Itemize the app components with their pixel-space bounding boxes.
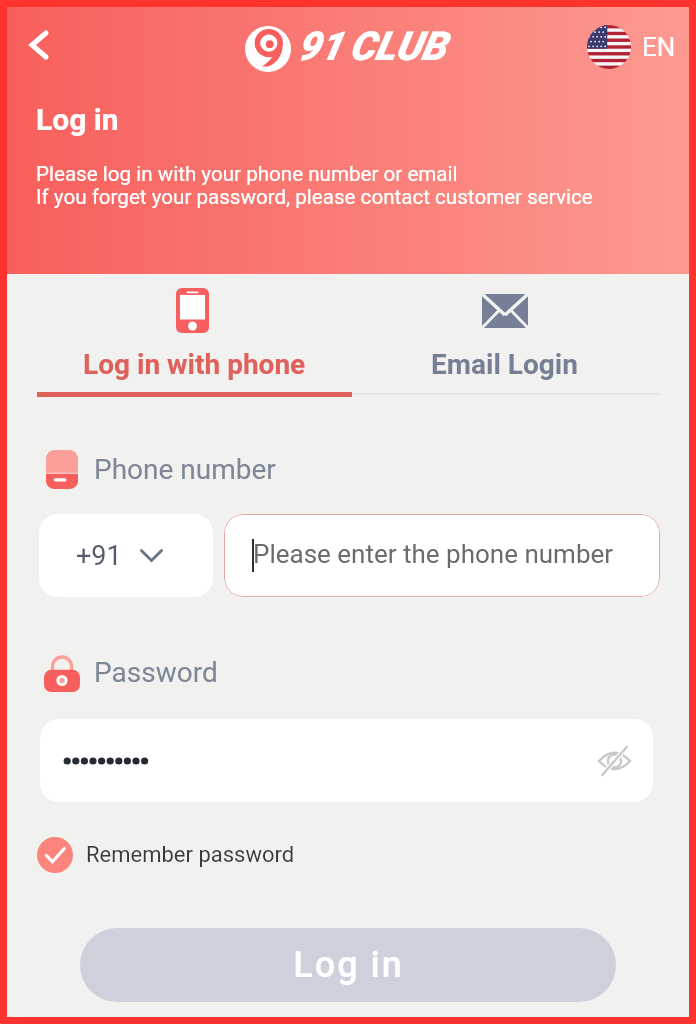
staticText: Email Login bbox=[431, 348, 578, 381]
button[interactable]: Please enter the phone number bbox=[224, 514, 660, 597]
button[interactable]: EN bbox=[587, 25, 676, 69]
staticText: CLUB bbox=[349, 23, 446, 70]
staticText: 91 bbox=[297, 23, 342, 70]
staticText: Log in bbox=[293, 944, 404, 986]
button[interactable]: +91 bbox=[39, 514, 213, 597]
staticText: Log in with phone bbox=[83, 348, 306, 381]
staticText: Log in bbox=[36, 102, 119, 137]
staticText: Remember password bbox=[86, 842, 295, 868]
staticText: If you forget your password, please cont… bbox=[36, 185, 593, 209]
staticText: +91 bbox=[76, 540, 122, 572]
button[interactable]: Log in with phone bbox=[37, 281, 352, 397]
button[interactable]: Back bbox=[15, 21, 63, 69]
staticText: EN bbox=[642, 32, 676, 62]
button[interactable]: Email Login bbox=[347, 281, 662, 397]
staticText: Phone number bbox=[94, 453, 276, 486]
button[interactable]: Show password bbox=[40, 719, 653, 802]
staticText: Please enter the phone number bbox=[253, 539, 614, 569]
button[interactable]: Remember password bbox=[37, 833, 295, 877]
button[interactable]: Log in bbox=[80, 928, 616, 1002]
staticText: Password bbox=[94, 656, 218, 689]
staticText: Please log in with your phone number or … bbox=[36, 162, 458, 186]
button[interactable]: Show password bbox=[592, 739, 636, 783]
